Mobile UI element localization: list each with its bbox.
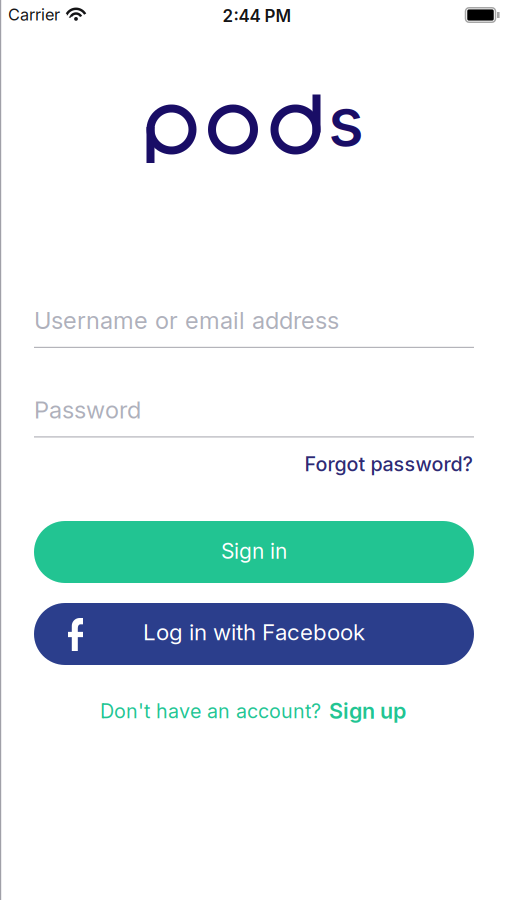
button[interactable]: Log in with Facebook <box>34 603 474 665</box>
staticText: Username or email address <box>34 306 339 335</box>
staticText: Log in with Facebook <box>143 618 365 645</box>
staticText: Sign up <box>329 698 406 724</box>
button[interactable]: Username or email address <box>34 306 474 348</box>
button[interactable]: Password <box>34 395 474 437</box>
button[interactable]: Sign in <box>34 521 474 583</box>
staticText: 2:44 PM <box>222 6 291 26</box>
staticText: Don't have an account? <box>100 699 321 723</box>
staticText: s <box>328 81 364 162</box>
button[interactable]: Forgot password? <box>35 452 472 476</box>
staticText: Password <box>34 395 141 424</box>
button[interactable]: Sign up <box>329 698 406 724</box>
staticText: Forgot password? <box>304 452 472 476</box>
staticText: Carrier <box>8 5 60 25</box>
staticText: Sign in <box>221 538 287 564</box>
